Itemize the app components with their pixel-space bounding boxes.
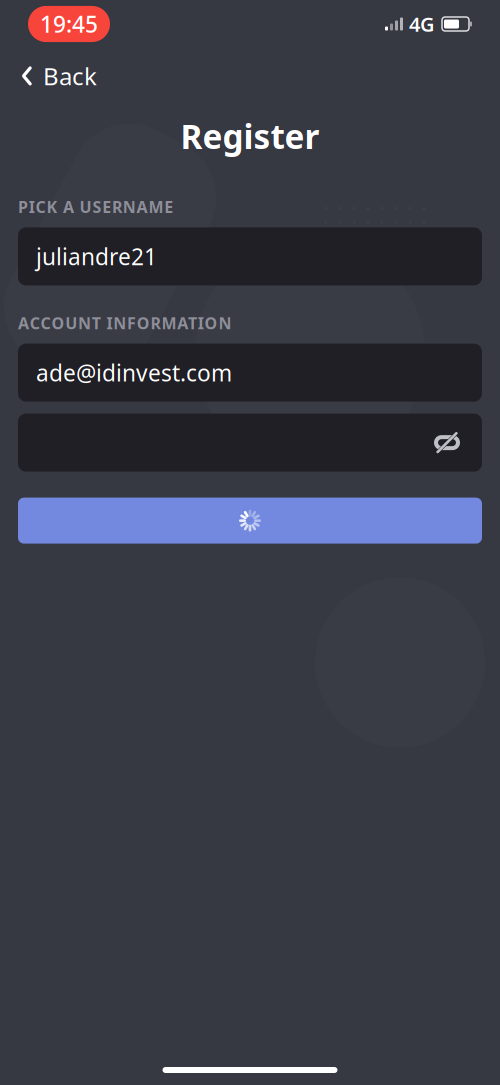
staticText: ACCOUNT INFORMATION (18, 312, 231, 334)
staticText: Back (43, 60, 97, 92)
staticText: juliandre21 (36, 241, 157, 271)
button[interactable]: Registering (18, 498, 482, 544)
staticText: 4G (409, 11, 435, 37)
staticText: PICK A USERNAME (18, 196, 173, 217)
staticText: Register (180, 114, 319, 158)
staticText: ade@idinvest.com (36, 358, 232, 388)
button[interactable]: Show password (430, 426, 464, 460)
staticText: 19:45 (40, 9, 98, 39)
button[interactable]: Back (4, 52, 113, 100)
